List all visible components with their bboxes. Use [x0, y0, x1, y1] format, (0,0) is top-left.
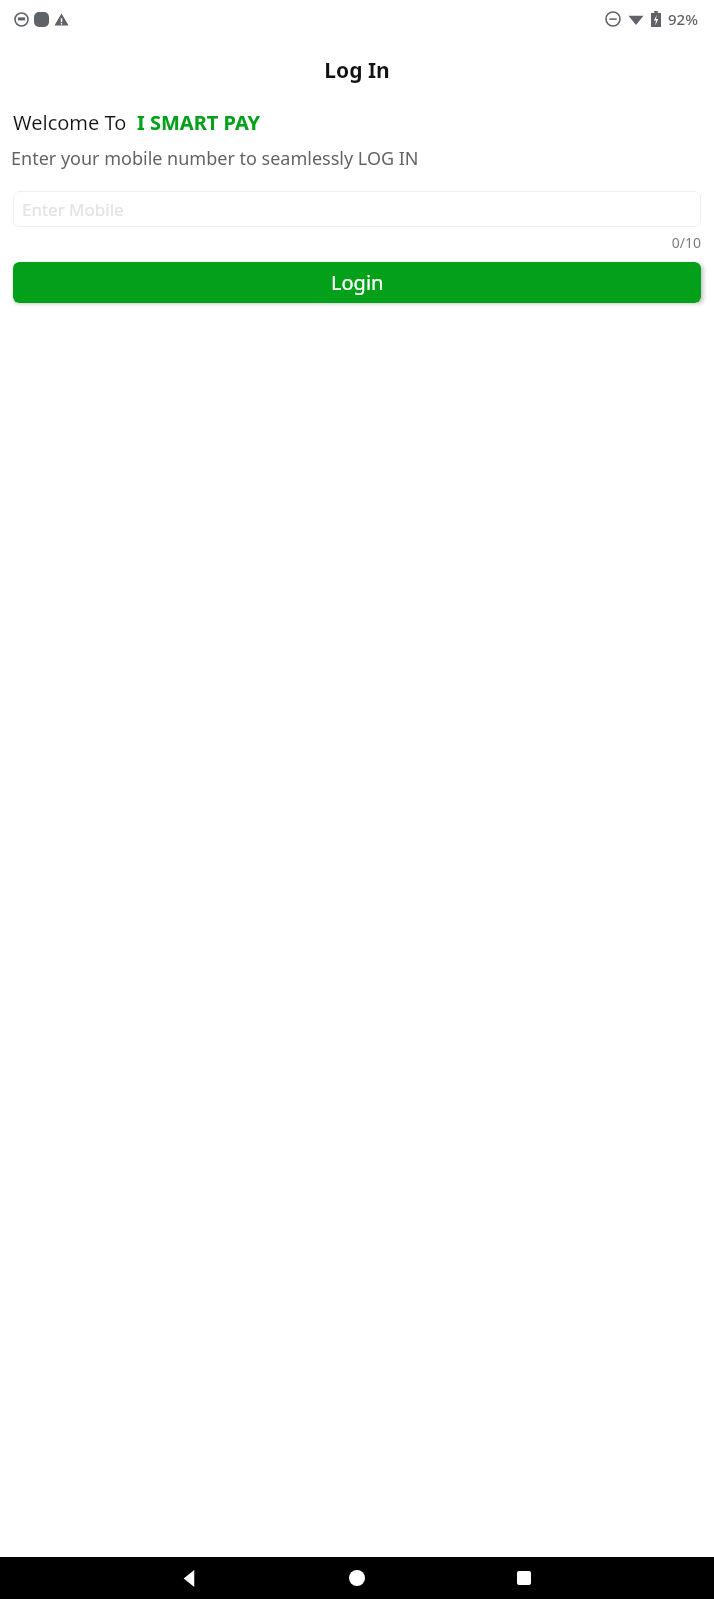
staticText: Enter your mobile number to seamlessly L…	[11, 146, 419, 171]
button[interactable]: Enter Mobile	[13, 191, 701, 227]
button[interactable]: Recent apps	[485, 1557, 563, 1599]
staticText: Login	[331, 269, 384, 296]
button[interactable]: Login	[13, 262, 701, 303]
staticText: Enter Mobile	[22, 198, 124, 221]
staticText: Welcome To	[13, 109, 127, 136]
staticText: I SMART PAY	[137, 109, 261, 136]
staticText: 0/10	[0, 233, 701, 252]
button[interactable]: Back	[151, 1557, 229, 1599]
button[interactable]: Home	[318, 1557, 396, 1599]
staticText: 92%	[668, 9, 698, 29]
staticText: Log In	[0, 56, 714, 85]
